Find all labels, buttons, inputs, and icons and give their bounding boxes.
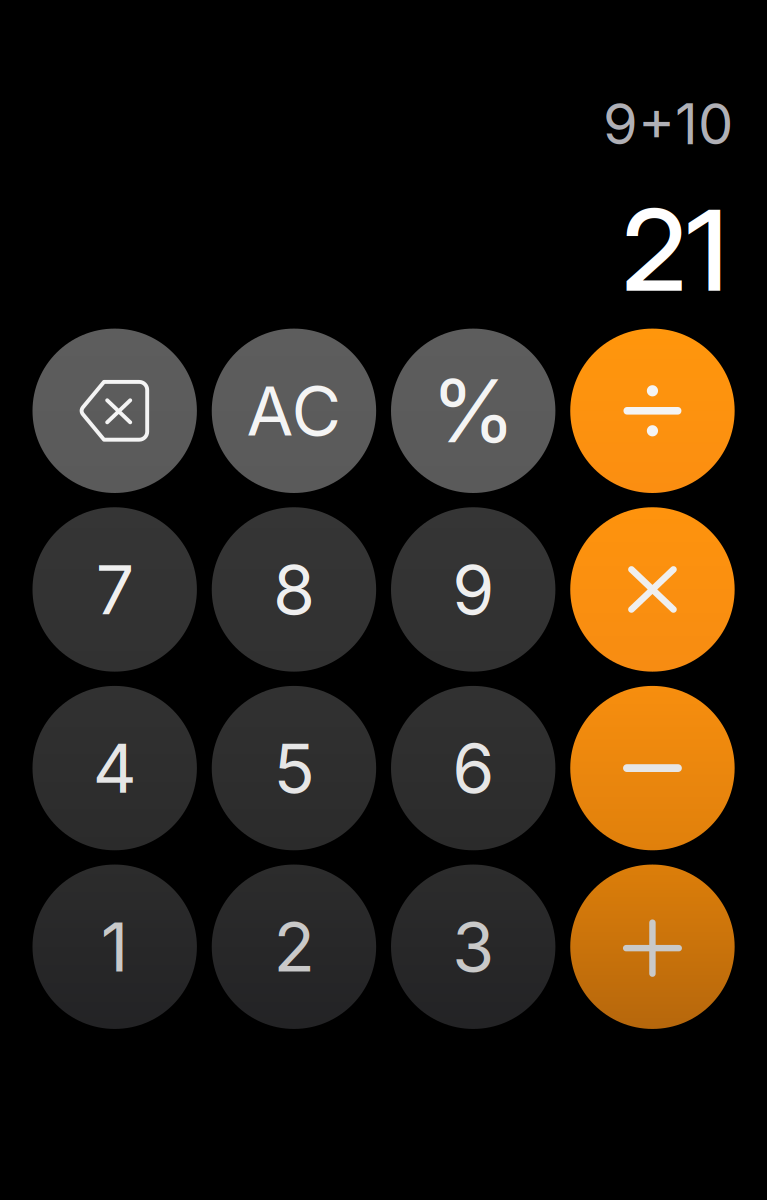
staticText: 21 <box>622 182 728 318</box>
button[interactable]: Divide <box>570 329 735 493</box>
staticText: 5 <box>273 727 314 809</box>
button[interactable]: Delete <box>32 329 197 493</box>
button[interactable]: Subtract <box>570 686 735 850</box>
button[interactable]: 9 <box>391 507 555 672</box>
staticText: 6 <box>452 727 494 809</box>
button[interactable]: AC <box>212 329 376 493</box>
staticText: 4 <box>93 727 137 809</box>
button[interactable]: Multiply <box>570 507 735 672</box>
staticText: 9 <box>452 548 494 631</box>
button[interactable]: 5 <box>212 686 376 850</box>
staticText: 1 <box>101 906 129 988</box>
button[interactable]: 6 <box>391 686 555 850</box>
staticText: % <box>431 358 516 463</box>
staticText: 2 <box>273 906 314 988</box>
button[interactable]: % <box>391 329 555 493</box>
staticText: AC <box>246 370 341 452</box>
staticText: 7 <box>96 548 134 631</box>
staticText: 8 <box>273 548 315 631</box>
button[interactable]: 4 <box>32 686 197 850</box>
button[interactable]: Add <box>570 864 735 1029</box>
button[interactable]: 1 <box>32 864 197 1029</box>
staticText: 9+10 <box>603 90 733 158</box>
button[interactable]: 3 <box>391 864 555 1029</box>
button[interactable]: 8 <box>212 507 376 672</box>
button[interactable]: 7 <box>32 507 197 672</box>
staticText: 3 <box>452 906 494 988</box>
button[interactable]: 2 <box>212 864 376 1029</box>
